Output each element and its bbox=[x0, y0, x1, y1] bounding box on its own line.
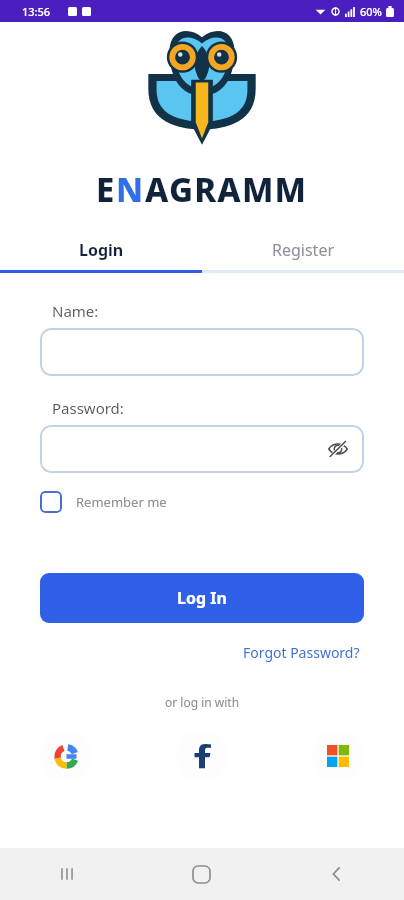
button[interactable]: Sign in with Google bbox=[40, 730, 92, 782]
staticText: 60% bbox=[360, 4, 382, 19]
button[interactable]: Show password bbox=[326, 437, 350, 461]
staticText: Forgot Password? bbox=[243, 643, 360, 662]
staticText: E bbox=[96, 167, 116, 212]
button[interactable]: Forgot Password? bbox=[239, 639, 364, 666]
staticText: Password: bbox=[52, 398, 124, 418]
staticText: Login bbox=[79, 239, 124, 261]
button[interactable]: Sign in with Facebook bbox=[176, 730, 228, 782]
button[interactable]: Back bbox=[269, 848, 404, 900]
staticText: Log In bbox=[177, 587, 227, 609]
button[interactable]: Register bbox=[202, 230, 404, 270]
button[interactable]: Recent apps bbox=[0, 848, 134, 900]
staticText: Name: bbox=[52, 301, 99, 321]
staticText: or log in with bbox=[40, 694, 364, 710]
button[interactable] bbox=[40, 328, 364, 376]
staticText: Remember me bbox=[76, 493, 167, 511]
button[interactable]: Sign in with Microsoft bbox=[312, 730, 364, 782]
button[interactable]: Log In bbox=[40, 573, 364, 623]
button[interactable]: Remember me bbox=[40, 487, 167, 517]
button[interactable]: Home bbox=[134, 848, 269, 900]
button[interactable]: Login bbox=[0, 230, 202, 270]
button[interactable]: Show password bbox=[40, 425, 364, 473]
staticText: N bbox=[116, 167, 145, 212]
staticText: Register bbox=[272, 239, 335, 261]
staticText: 13:56 bbox=[22, 4, 51, 19]
staticText: AGRAMM bbox=[145, 167, 308, 212]
